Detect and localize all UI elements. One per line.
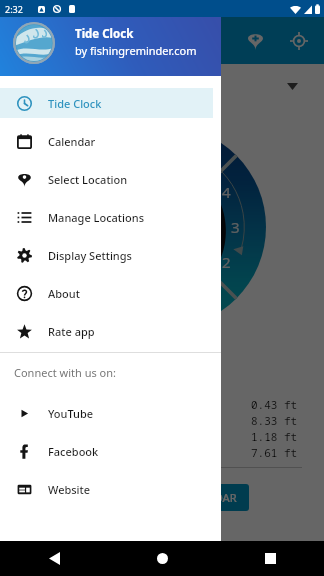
staticText: Tide Clock <box>75 26 134 42</box>
button[interactable]: Recents <box>250 541 290 576</box>
staticText: 1.18 ft <box>251 429 298 444</box>
staticText: 2 <box>222 252 231 272</box>
staticText: 9 <box>91 217 100 237</box>
button[interactable]: Display Settings <box>0 236 221 274</box>
staticText: 4 <box>222 182 231 202</box>
staticText: Santa Cruz, California <box>14 77 146 95</box>
button[interactable]: YouTube <box>0 394 221 432</box>
staticText: 10 <box>95 252 113 272</box>
staticText: Manage Locations <box>48 210 145 225</box>
button[interactable]: CALENDAR <box>168 484 249 511</box>
staticText: 0.43 ft <box>251 397 298 412</box>
staticText: CALENDAR <box>180 490 237 505</box>
button[interactable]: Website <box>0 470 221 508</box>
staticText: Tide Clock <box>54 32 122 51</box>
staticText: 8.33 ft <box>251 413 298 428</box>
staticText: High <box>26 445 53 460</box>
staticText: 2:32 <box>5 3 23 15</box>
staticText: 7.61 ft <box>251 445 298 460</box>
staticText: Display Settings <box>48 248 132 263</box>
button[interactable]: Add location <box>238 24 272 58</box>
button[interactable]: Manage Locations <box>0 198 221 236</box>
button[interactable]: Facebook <box>0 432 221 470</box>
staticText: High <box>26 413 53 428</box>
staticText: by fishingreminder.com <box>75 43 197 58</box>
staticText: Connect with us on: <box>14 365 116 380</box>
staticText: YouTube <box>48 406 94 421</box>
staticText: Select Location <box>48 172 128 187</box>
staticText: 3 <box>231 217 240 237</box>
button[interactable]: Tide Clock <box>0 84 221 122</box>
button[interactable]: TIDE TABLE <box>22 484 154 511</box>
button[interactable]: Calendar <box>0 122 221 160</box>
button[interactable]: Back <box>34 541 74 576</box>
button[interactable]: Select Location <box>0 160 221 198</box>
button[interactable]: Open navigation drawer <box>10 25 42 57</box>
staticText: Rate app <box>48 324 95 339</box>
staticText: TIDE TABLE <box>59 490 118 505</box>
staticText: Tide Clock <box>48 96 102 111</box>
staticText: Facebook <box>48 444 99 459</box>
staticText: 8 <box>100 182 109 202</box>
staticText: About <box>48 286 80 301</box>
button[interactable]: My location <box>282 24 316 58</box>
button[interactable]: About <box>0 274 221 312</box>
button[interactable]: Rate app <box>0 312 221 350</box>
button[interactable]: Home <box>142 541 182 576</box>
staticText: Calendar <box>48 134 96 149</box>
staticText: Website <box>48 482 91 497</box>
